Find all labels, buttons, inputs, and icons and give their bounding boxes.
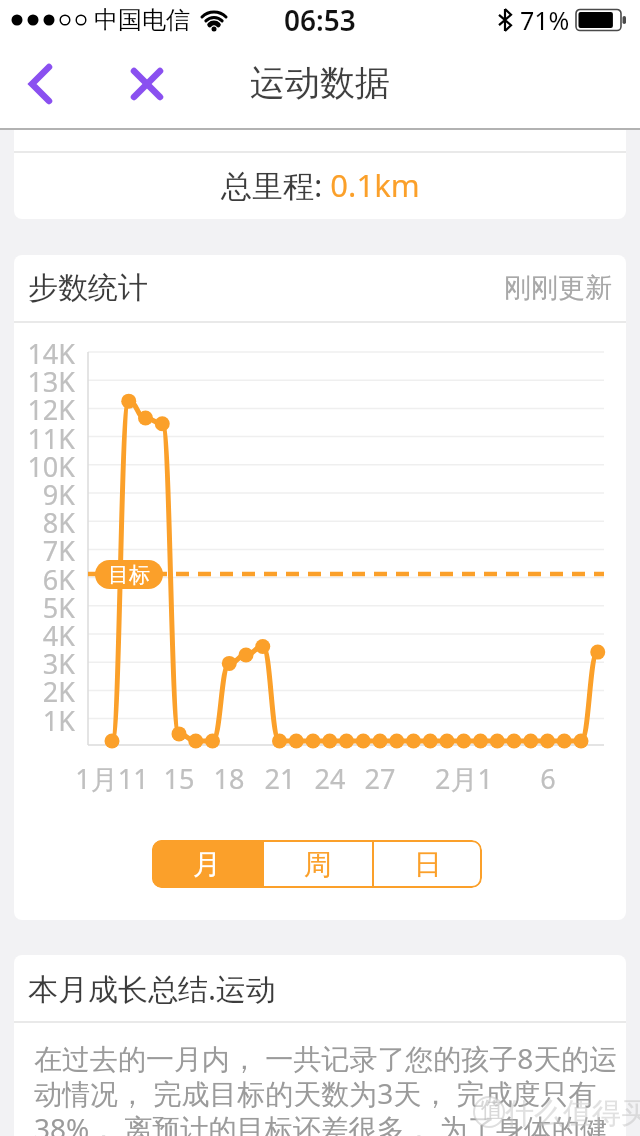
staticText: 6 [503,760,593,797]
staticText: 27 [335,760,425,797]
staticText: 2月1 [419,760,509,797]
staticText: 21 [235,760,325,797]
staticText: 日 [414,847,442,882]
staticText: 71% [520,3,570,37]
staticText: 13K [14,363,75,400]
staticText: 12K [14,391,75,428]
staticText: 24 [285,760,375,797]
staticText: 动情况， 完成目标的天数为3天， 完成度只有 [34,1074,597,1112]
staticText: 14K [14,335,75,372]
staticText: 8K [14,504,75,541]
staticText: 值 [481,1096,503,1124]
staticText: 什么值得买 [505,1095,640,1132]
staticText: 06:53 [284,1,356,39]
button[interactable]: 月 [152,840,262,888]
staticText: 周 [304,847,332,882]
staticText: 目标 [108,562,150,588]
staticText: 步数统计 [28,269,148,307]
staticText: 本月成长总结.运动 [28,968,277,1009]
staticText: 在过去的一月内， 一共记录了您的孩子8天的运 [34,1039,618,1077]
button[interactable]: 周 [264,840,372,888]
staticText: 月 [193,847,221,882]
staticText: 6K [14,561,75,598]
staticText: 38%， 离预计的目标还差很多， 为了身体的健 [34,1109,608,1136]
staticText: 中国电信 [94,5,190,35]
staticText: 11K [14,420,75,457]
staticText: 10K [14,448,75,485]
staticText: 15 [134,760,224,797]
staticText: 总里程: 0.1km [221,164,420,206]
staticText: 4K [14,617,75,654]
staticText: 刚刚更新 [504,271,612,305]
button[interactable] [124,54,170,114]
staticText: 18 [184,760,274,797]
button[interactable] [18,54,64,114]
staticText: 9K [14,476,75,513]
button[interactable]: 日 [374,840,482,888]
staticText: 7K [14,532,75,569]
staticText: 5K [14,589,75,626]
staticText: 运动数据 [250,61,390,105]
staticText: 3K [14,645,75,682]
staticText: 1月11 [67,760,157,797]
staticText: 2K [14,673,75,710]
staticText: 1K [14,702,75,739]
